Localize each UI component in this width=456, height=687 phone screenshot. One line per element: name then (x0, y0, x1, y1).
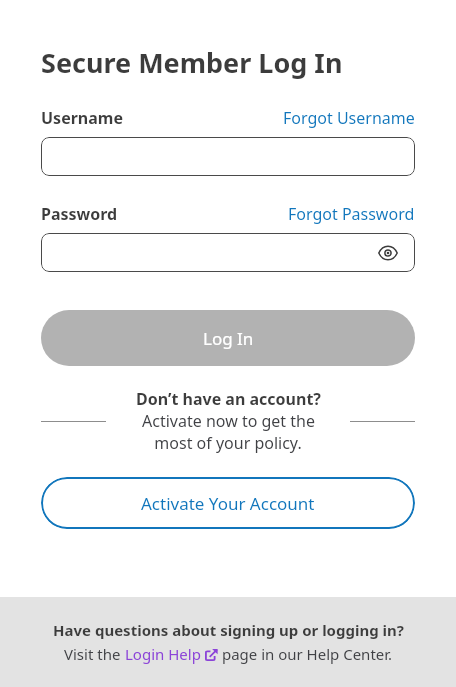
staticText: Login Help (125, 644, 201, 664)
staticText: Password (41, 203, 118, 225)
staticText: page in our Help Center. (218, 644, 393, 664)
staticText: Have questions about signing up or loggi… (53, 620, 404, 640)
button[interactable]: Activate Your Account (41, 477, 415, 529)
button[interactable]: Show password (41, 233, 415, 272)
staticText: Visit the (64, 644, 125, 664)
staticText: Activate now to get the (142, 410, 315, 432)
button[interactable]: Forgot Password (288, 203, 415, 225)
staticText: Don’t have an account? (136, 388, 321, 410)
staticText: Secure Member Log In (41, 44, 343, 81)
staticText: Forgot Password (288, 203, 415, 225)
staticText: Username (41, 107, 123, 129)
button[interactable]: Log In (41, 310, 415, 366)
button[interactable]: Forgot Username (283, 107, 415, 129)
staticText: most of your policy. (154, 432, 302, 454)
button[interactable] (41, 137, 415, 176)
staticText: Log In (203, 327, 254, 350)
staticText: Forgot Username (283, 107, 415, 129)
button[interactable]: Show password (377, 242, 399, 264)
button[interactable]: Login Help (125, 644, 218, 664)
staticText: Activate Your Account (141, 492, 315, 515)
other: Opens in new window (205, 648, 218, 661)
